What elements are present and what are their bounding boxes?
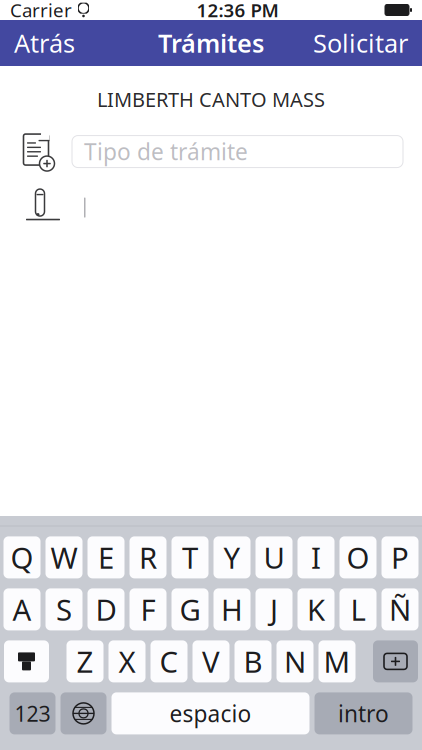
staticText: M	[323, 642, 350, 681]
staticText: E	[98, 538, 114, 577]
staticText: T	[182, 538, 198, 577]
button[interactable]: espacio	[111, 692, 309, 734]
button[interactable]: K	[297, 588, 334, 630]
staticText: L	[350, 590, 365, 629]
button[interactable]: H	[213, 588, 250, 630]
button[interactable]: C	[150, 640, 187, 682]
button[interactable]: W	[45, 536, 82, 578]
staticText: 123	[14, 699, 50, 727]
staticText: Q	[10, 538, 33, 577]
button[interactable]: J	[255, 588, 292, 630]
staticText: Carrier	[10, 0, 72, 22]
staticText: X	[118, 642, 135, 681]
button[interactable]: Solicitar	[299, 20, 422, 66]
staticText: B	[243, 642, 262, 681]
button[interactable]: Q	[3, 536, 40, 578]
button[interactable]: P	[381, 536, 418, 578]
button[interactable]: B	[234, 640, 271, 682]
staticText: espacio	[169, 698, 251, 728]
button[interactable]: F	[129, 588, 166, 630]
staticText: H	[221, 590, 243, 629]
staticText: J	[270, 590, 278, 629]
staticText: P	[391, 538, 409, 577]
staticText: Tipo de trámite	[84, 136, 248, 167]
button[interactable]: R	[129, 536, 166, 578]
staticText: Ñ	[389, 590, 411, 629]
staticText: W	[50, 538, 77, 577]
staticText: Z	[76, 642, 93, 681]
button[interactable]: intro	[314, 692, 412, 734]
button[interactable]: I	[297, 536, 334, 578]
staticText: G	[179, 590, 200, 629]
button[interactable]: 123	[9, 692, 55, 734]
staticText: intro	[338, 698, 389, 728]
button[interactable]: U	[255, 536, 292, 578]
staticText: V	[202, 642, 220, 681]
button[interactable]: Mayúsculas	[4, 640, 49, 682]
button[interactable]: A	[3, 588, 40, 630]
staticText: Atrás	[14, 26, 75, 60]
button[interactable]: V	[192, 640, 229, 682]
button[interactable]: Ñ	[381, 588, 418, 630]
button[interactable]: N	[276, 640, 313, 682]
button[interactable]: O	[339, 536, 376, 578]
button[interactable]: X	[108, 640, 145, 682]
button[interactable]: T	[171, 536, 208, 578]
staticText: Solicitar	[313, 26, 408, 60]
button[interactable]: M	[318, 640, 355, 682]
button[interactable]: Tipo de trámite	[72, 136, 403, 168]
button[interactable]: G	[171, 588, 208, 630]
staticText: N	[284, 642, 306, 681]
staticText: F	[140, 590, 155, 629]
button[interactable]: Borrar	[373, 640, 418, 682]
staticText: S	[56, 590, 72, 629]
button[interactable]	[72, 192, 403, 224]
button[interactable]: Z	[66, 640, 103, 682]
staticText: R	[139, 538, 157, 577]
button[interactable]: E	[87, 536, 124, 578]
button[interactable]: Y	[213, 536, 250, 578]
staticText: Trámites	[158, 26, 264, 60]
staticText: Y	[223, 538, 240, 577]
staticText: C	[159, 642, 178, 681]
staticText: K	[307, 590, 325, 629]
button[interactable]: Cambiar teclado	[60, 692, 106, 734]
staticText: D	[95, 590, 116, 629]
button[interactable]: D	[87, 588, 124, 630]
staticText: A	[12, 590, 31, 629]
staticText: I	[311, 538, 321, 577]
button[interactable]: L	[339, 588, 376, 630]
button[interactable]: S	[45, 588, 82, 630]
staticText: U	[263, 538, 284, 577]
button[interactable]: Atrás	[0, 20, 89, 66]
staticText: LIMBERTH CANTO MASS	[97, 86, 325, 113]
staticText: O	[346, 538, 369, 577]
staticText: 12:36 PM	[196, 0, 278, 22]
